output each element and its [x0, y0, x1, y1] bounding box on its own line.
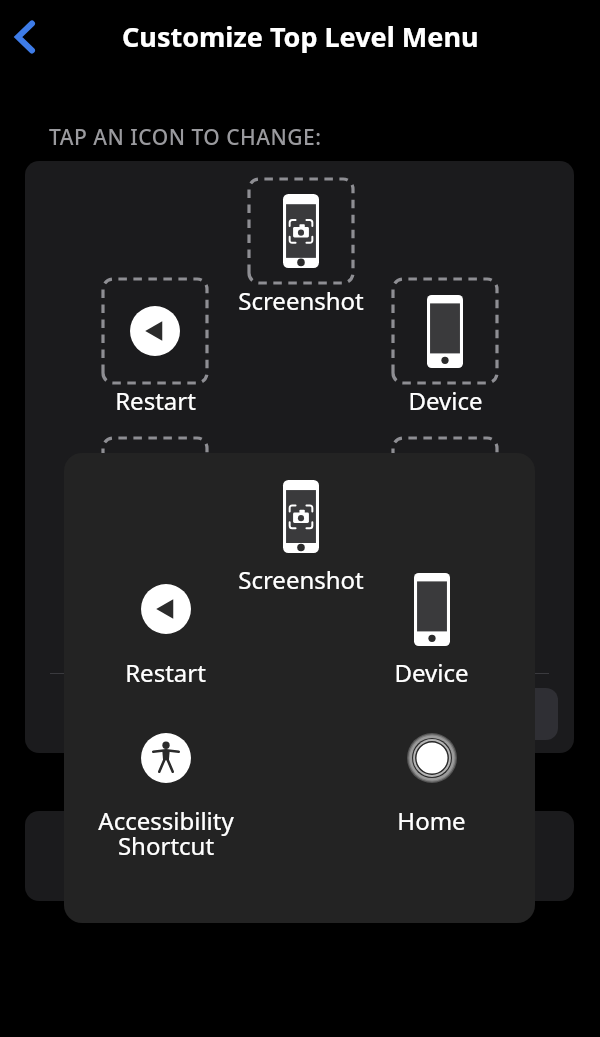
button[interactable]: Reset — [455, 688, 558, 740]
staticText: Accessibility Shortcut — [98, 804, 234, 862]
staticText: Screenshot — [238, 563, 364, 596]
button[interactable]: Restart — [90, 584, 241, 689]
staticText: Restart — [115, 384, 196, 417]
staticText: Screenshot — [238, 284, 364, 317]
button[interactable]: Screenshot — [225, 480, 376, 596]
button[interactable]: Accessibility Shortcut — [79, 438, 231, 542]
staticText: Device — [408, 384, 483, 417]
button[interactable]: Back — [2, 14, 48, 60]
button[interactable]: Restart — [79, 279, 231, 417]
button[interactable]: Accessibility Shortcut — [90, 733, 241, 862]
staticText: Home — [397, 804, 466, 837]
staticText: TAP AN ICON TO CHANGE: — [49, 123, 322, 152]
button[interactable]: Screenshot — [225, 179, 377, 317]
button[interactable]: Device — [356, 573, 507, 689]
staticText: Device — [394, 656, 469, 689]
staticText: Restart — [125, 656, 206, 689]
staticText: Customize Top Level Menu — [122, 18, 479, 55]
button[interactable]: Home — [369, 438, 521, 542]
button[interactable]: Home — [356, 733, 507, 837]
button[interactable]: Device — [369, 279, 521, 417]
